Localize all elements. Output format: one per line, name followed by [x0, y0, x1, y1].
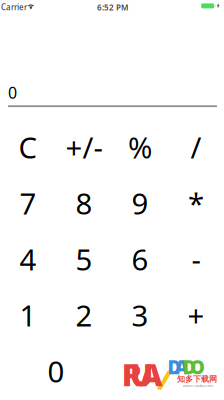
staticText: +: [187, 295, 204, 334]
staticText: R: [122, 354, 143, 395]
staticText: www.ruadao.com: [182, 383, 213, 388]
staticText: D: [167, 355, 181, 379]
staticText: 8: [75, 183, 92, 222]
staticText: 6:52 PM: [97, 2, 128, 13]
staticText: D: [182, 355, 196, 379]
button[interactable]: 5: [56, 231, 112, 287]
staticText: 0: [47, 351, 64, 390]
button[interactable]: 6: [112, 231, 168, 287]
staticText: *: [188, 183, 204, 222]
button[interactable]: *: [168, 175, 224, 231]
staticText: A: [175, 355, 189, 379]
button[interactable]: 0: [0, 343, 112, 399]
staticText: 0: [8, 82, 17, 103]
button[interactable]: 1: [0, 287, 56, 343]
staticText: 4: [19, 239, 36, 278]
button[interactable]: +/-: [56, 119, 112, 175]
button[interactable]: 2: [56, 287, 112, 343]
staticText: 5: [75, 239, 92, 278]
button[interactable]: +: [168, 287, 224, 343]
staticText: Carrier: [1, 2, 27, 12]
button[interactable]: 4: [0, 231, 56, 287]
button[interactable]: C: [0, 119, 56, 175]
staticText: 6: [131, 239, 148, 278]
staticText: 9: [131, 183, 148, 222]
button[interactable]: %: [112, 119, 168, 175]
staticText: O: [190, 355, 205, 379]
button[interactable]: -: [168, 231, 224, 287]
button[interactable]: 3: [112, 287, 168, 343]
button[interactable]: 9: [112, 175, 168, 231]
staticText: +/-: [65, 127, 102, 166]
staticText: 1: [19, 295, 36, 334]
staticText: 知多下载网: [177, 374, 217, 384]
staticText: /: [190, 127, 201, 166]
button[interactable]: 7: [0, 175, 56, 231]
staticText: U: [130, 354, 153, 395]
staticText: -: [191, 239, 200, 278]
staticText: C: [18, 127, 37, 166]
staticText: %: [128, 127, 152, 166]
staticText: A: [140, 354, 162, 395]
staticText: 7: [19, 183, 36, 222]
staticText: 2: [75, 295, 92, 334]
button[interactable]: /: [168, 119, 224, 175]
staticText: 3: [131, 295, 148, 334]
button[interactable]: 8: [56, 175, 112, 231]
